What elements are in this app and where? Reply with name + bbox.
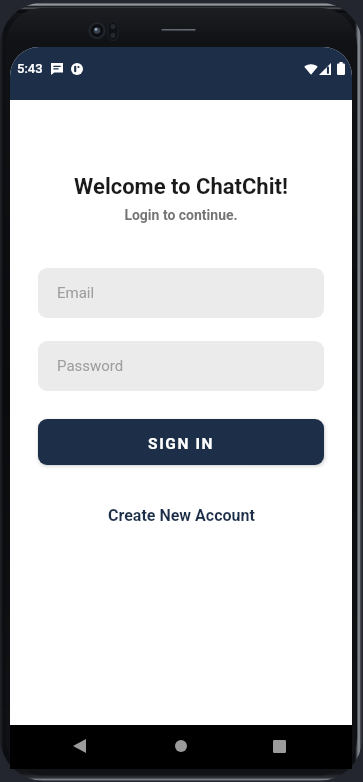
staticText: Login to continue. xyxy=(124,207,238,223)
staticText: Welcome to ChatChit! xyxy=(74,174,288,200)
staticText: Create New Account xyxy=(108,506,255,525)
button[interactable]: SIGN IN xyxy=(38,419,324,465)
staticText: SIGN IN xyxy=(148,435,215,453)
button[interactable]: Recent apps xyxy=(261,728,297,764)
button[interactable]: Home xyxy=(163,728,199,764)
staticText: 5:43 xyxy=(17,61,43,76)
button[interactable]: Create New Account xyxy=(100,501,263,530)
button[interactable]: Password xyxy=(38,341,324,391)
staticText: Email xyxy=(57,284,95,302)
staticText: Password xyxy=(57,357,124,375)
button[interactable]: Back xyxy=(61,728,97,764)
button[interactable]: Email xyxy=(38,268,324,318)
